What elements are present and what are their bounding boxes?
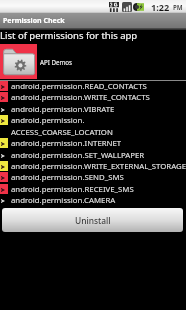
button[interactable]: Uninstall	[2, 208, 183, 232]
button[interactable]: android.permission.CAMERA	[0, 195, 186, 206]
staticText: android.permission.VIBRATE	[11, 104, 115, 115]
button[interactable]: android.permission.WRITE_EXTERNAL_STORAG…	[0, 161, 186, 172]
button[interactable]: API Demos	[0, 44, 186, 79]
button[interactable]: android.permission.INTERNET	[0, 138, 186, 149]
staticText: android.permission. ACCESS_COARSE_LOCATI…	[11, 115, 113, 137]
button[interactable]: android.permission. ACCESS_COARSE_LOCATI…	[0, 115, 186, 138]
staticText: android.permission.RECEIVE_SMS	[11, 184, 134, 195]
staticText: Uninstall	[75, 215, 111, 226]
staticText: API Demos	[40, 58, 72, 66]
button[interactable]: android.permission.WRITE_CONTACTS	[0, 92, 186, 103]
staticText: android.permission.INTERNET	[11, 138, 122, 149]
staticText: android.permission.WRITE_EXTERNAL_STORAG…	[11, 161, 186, 172]
staticText: android.permission.CAMERA	[11, 195, 116, 206]
staticText: android.permission.SET_WALLPAPER	[11, 150, 145, 161]
button[interactable]: android.permission.SET_WALLPAPER	[0, 150, 186, 161]
staticText: android.permission.WRITE_CONTACTS	[11, 92, 150, 103]
button[interactable]: android.permission.SEND_SMS	[0, 172, 186, 183]
staticText: Permission Check	[3, 16, 65, 26]
staticText: PM	[173, 3, 183, 11]
staticText: android.permission.SEND_SMS	[11, 172, 124, 183]
button[interactable]: android.permission.READ_CONTACTS	[0, 81, 186, 92]
staticText: android.permission.READ_CONTACTS	[11, 81, 147, 92]
button[interactable]: android.permission.RECEIVE_SMS	[0, 184, 186, 195]
staticText: List of permissions for this app	[0, 29, 138, 42]
button[interactable]: android.permission.VIBRATE	[0, 104, 186, 115]
staticText: 1:22	[151, 1, 170, 13]
